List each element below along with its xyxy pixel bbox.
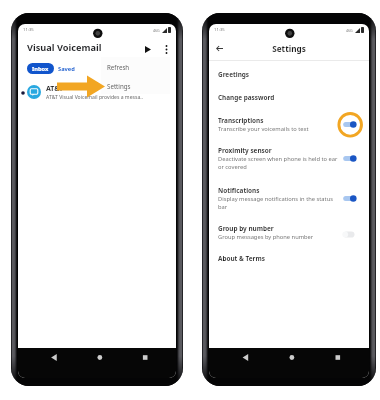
button[interactable]: Enabled — [341, 154, 356, 163]
staticText: AT&T — [46, 84, 64, 94]
staticText: Transcriptions — [218, 116, 264, 125]
staticText: About & Terms — [218, 254, 265, 263]
staticText: Group messages by phone number — [218, 233, 314, 241]
staticText: Change password — [218, 93, 275, 102]
staticText: Deactivate screen when phone is held to … — [218, 155, 338, 171]
staticText: 46G — [346, 28, 353, 33]
staticText: Transcribe your voicemails to text — [218, 125, 309, 133]
staticText: Saved — [58, 65, 75, 73]
staticText: Refresh — [107, 63, 130, 71]
button[interactable]: About & Terms — [209, 254, 369, 263]
button[interactable]: Notifications — [209, 186, 369, 211]
staticText: Settings — [107, 82, 131, 90]
button[interactable]: Group by number — [209, 224, 369, 241]
staticText: 11:35 — [214, 27, 225, 33]
button[interactable]: Inbox — [27, 63, 54, 74]
button[interactable]: Enabled — [341, 120, 356, 129]
staticText: 46G — [153, 28, 160, 33]
button[interactable]: Back — [209, 38, 229, 58]
button[interactable]: Disabled — [341, 230, 356, 239]
staticText: Notifications — [218, 186, 260, 195]
staticText: AT&T Visual Voicemail provides a messa.. — [46, 94, 143, 101]
button[interactable]: Transcriptions — [209, 116, 369, 133]
staticText: Greetings — [218, 70, 250, 79]
staticText: Settings — [219, 43, 359, 54]
button[interactable] — [18, 83, 176, 102]
button[interactable]: Refresh — [101, 57, 170, 76]
button[interactable]: More options — [158, 41, 174, 57]
button[interactable]: Saved — [57, 63, 76, 74]
button[interactable]: Play all — [140, 41, 156, 57]
button[interactable]: Proximity sensor — [209, 146, 369, 171]
staticText: Visual Voicemail — [27, 41, 102, 54]
button[interactable]: Enabled — [341, 194, 356, 203]
staticText: Group by number — [218, 224, 274, 233]
staticText: Inbox — [32, 65, 49, 73]
staticText: 11:35 — [23, 27, 34, 33]
button[interactable]: Change password — [209, 93, 369, 102]
staticText: Proximity sensor — [218, 146, 272, 155]
button[interactable]: Greetings — [209, 70, 369, 79]
staticText: Display message notifications in the sta… — [218, 195, 333, 211]
button[interactable]: Settings — [101, 76, 170, 95]
